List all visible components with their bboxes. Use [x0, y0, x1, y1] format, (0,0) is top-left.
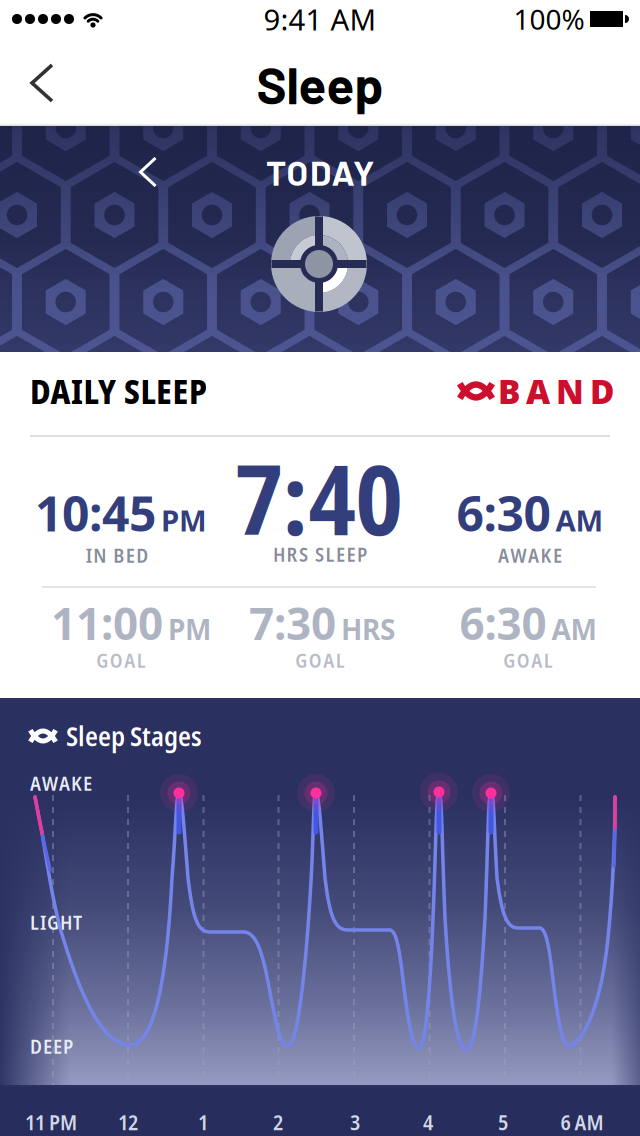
staticText: 7:40	[235, 433, 402, 563]
staticText: Sleep	[256, 54, 383, 114]
staticText: TODAY	[266, 151, 374, 193]
staticText: 9:41 AM	[263, 0, 376, 38]
staticText: DAILY SLEEP	[30, 368, 207, 414]
staticText: 11:00	[51, 594, 163, 652]
staticText: GOAL	[96, 646, 146, 674]
staticText: HRS	[341, 611, 395, 648]
staticText: AWAKE	[498, 541, 562, 569]
staticText: AWAKE	[30, 769, 92, 797]
staticText: LIGHT	[30, 908, 82, 936]
staticText: Sleep Stages	[66, 718, 202, 754]
staticText: 6:30	[456, 481, 550, 545]
staticText: GOAL	[503, 646, 553, 674]
button[interactable]: UA Band	[410, 369, 610, 413]
staticText: PM	[168, 611, 211, 648]
staticText: AM	[555, 501, 603, 540]
staticText: GOAL	[295, 646, 345, 674]
staticText: 6:30	[459, 594, 546, 652]
button[interactable]: Back	[120, 138, 175, 206]
staticText: 6 AM	[560, 1107, 603, 1136]
staticText: DEEP	[30, 1032, 73, 1060]
staticText: 12	[118, 1107, 138, 1136]
staticText: PM	[161, 501, 207, 540]
staticText: 100%	[513, 0, 584, 38]
staticText: AM	[551, 611, 596, 648]
staticText: 5	[498, 1107, 508, 1136]
staticText: HRS SLEEP	[273, 540, 367, 568]
staticText: IN BED	[86, 541, 148, 569]
button[interactable]: Back	[0, 45, 72, 121]
staticText: 1	[198, 1107, 208, 1136]
staticText: 10:45	[35, 481, 156, 545]
staticText: 7:30	[249, 594, 336, 652]
staticText: 2	[273, 1107, 283, 1136]
staticText: 11 PM	[25, 1107, 77, 1136]
staticText: 4	[423, 1107, 433, 1136]
staticText: BAND	[498, 369, 614, 413]
staticText: 3	[350, 1107, 360, 1136]
